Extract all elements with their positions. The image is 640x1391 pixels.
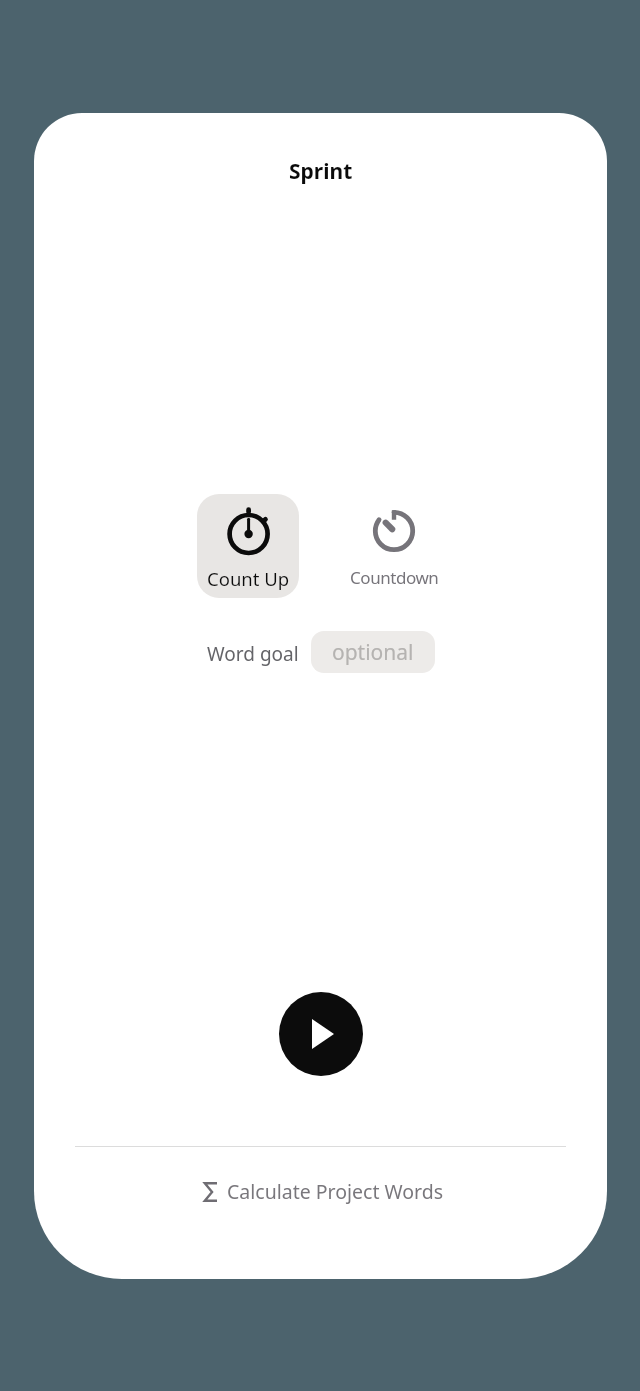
staticText: optional <box>332 638 414 667</box>
staticText: Word goal <box>207 641 299 667</box>
button[interactable]: Calculate Project Words <box>37 1178 607 1205</box>
button[interactable]: Countdown <box>343 494 446 598</box>
staticText: Countdown <box>350 566 439 589</box>
staticText: Sprint <box>289 157 353 186</box>
button[interactable]: optional <box>311 631 435 673</box>
staticText: Count Up <box>207 566 290 591</box>
button[interactable] <box>279 992 363 1076</box>
staticText: Calculate Project Words <box>227 1178 444 1205</box>
button[interactable]: Count Up <box>197 494 299 598</box>
